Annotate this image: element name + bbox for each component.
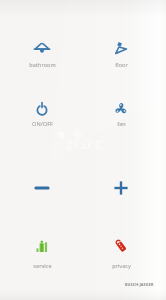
button[interactable]: floor [95, 34, 147, 70]
staticText: privacy [112, 262, 131, 270]
staticText: floor [115, 61, 128, 69]
staticText: BUSCH·JAEGER [125, 282, 154, 287]
button[interactable]: Decrease [16, 174, 68, 202]
button[interactable]: ON/OFF [16, 95, 68, 129]
staticText: bathroom [29, 61, 56, 69]
staticText: service [33, 262, 52, 270]
staticText: fan [117, 120, 126, 128]
staticText: ON/OFF [32, 120, 53, 128]
button[interactable]: fan [95, 95, 147, 129]
button[interactable]: privacy [95, 232, 147, 271]
button[interactable]: Increase [95, 174, 147, 202]
button[interactable]: bathroom [16, 34, 68, 70]
button[interactable]: service [16, 232, 68, 271]
